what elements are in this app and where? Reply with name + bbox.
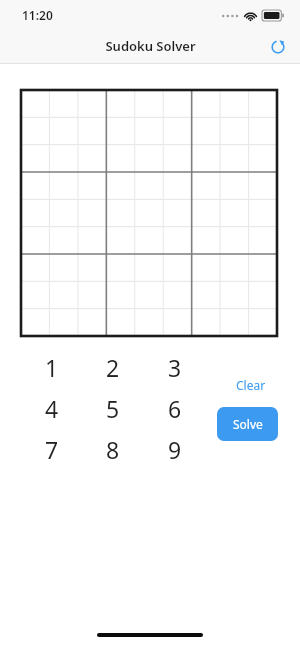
staticText: 9	[168, 434, 182, 465]
button[interactable]: Solve	[217, 407, 278, 441]
staticText: Solve	[233, 416, 263, 432]
button[interactable]: 4	[34, 392, 70, 424]
staticText: 8	[106, 434, 120, 465]
staticText: 7	[45, 434, 59, 465]
staticText: 2	[106, 352, 120, 383]
button[interactable]: Clear	[226, 374, 276, 396]
button[interactable]: 2	[95, 351, 131, 383]
button[interactable]: 3	[157, 351, 193, 383]
staticText: 3	[168, 352, 182, 383]
staticText: 1	[45, 352, 59, 383]
button[interactable]: 6	[157, 392, 193, 424]
staticText: 4	[45, 393, 59, 424]
button[interactable]: 1	[34, 351, 70, 383]
button[interactable]: 8	[95, 433, 131, 465]
staticText: 5	[106, 393, 120, 424]
staticText: Clear	[236, 377, 266, 393]
button[interactable]: Refresh	[264, 33, 292, 61]
staticText: 6	[168, 393, 182, 424]
button[interactable]: 7	[34, 433, 70, 465]
staticText: Sudoku Solver	[105, 37, 196, 55]
staticText: 11:20	[22, 7, 53, 23]
button[interactable]: 9	[157, 433, 193, 465]
button[interactable]: 5	[95, 392, 131, 424]
